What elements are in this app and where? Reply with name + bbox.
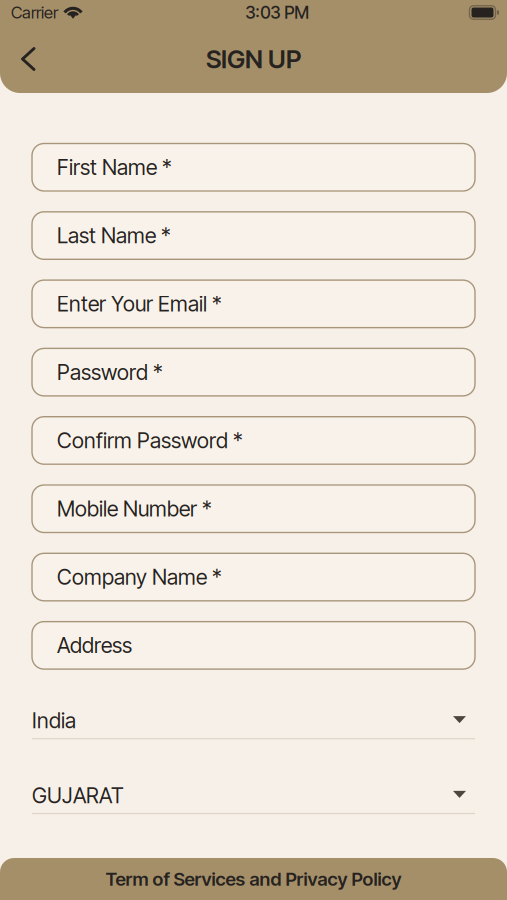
button[interactable]: GUJARAT: [32, 767, 475, 814]
staticText: Company Name *: [57, 564, 222, 590]
button[interactable]: Company Name *: [32, 553, 475, 601]
staticText: Last Name *: [57, 223, 171, 248]
button[interactable]: Back: [0, 37, 50, 80]
button[interactable]: Mobile Number *: [32, 485, 475, 532]
button[interactable]: Address: [32, 622, 475, 669]
staticText: GUJARAT: [32, 782, 124, 808]
button[interactable]: Password *: [32, 348, 475, 396]
staticText: First Name *: [57, 154, 172, 180]
staticText: Enter Your Email *: [57, 291, 222, 317]
staticText: Password *: [57, 359, 163, 385]
button[interactable]: Term of Services and Privacy Policy: [0, 858, 507, 900]
button[interactable]: Last Name *: [32, 212, 475, 259]
staticText: Confirm Password *: [57, 427, 243, 453]
staticText: SIGN UP: [206, 44, 301, 74]
button[interactable]: Confirm Password *: [32, 417, 475, 464]
staticText: Term of Services and Privacy Policy: [105, 868, 401, 890]
button[interactable]: Enter Your Email *: [32, 280, 475, 328]
button[interactable]: India: [32, 692, 475, 739]
button[interactable]: First Name *: [32, 143, 475, 191]
staticText: Carrier: [11, 2, 58, 23]
staticText: India: [32, 708, 76, 733]
staticText: 3:03 PM: [245, 2, 309, 23]
staticText: Address: [57, 632, 132, 658]
staticText: Mobile Number *: [57, 496, 212, 522]
